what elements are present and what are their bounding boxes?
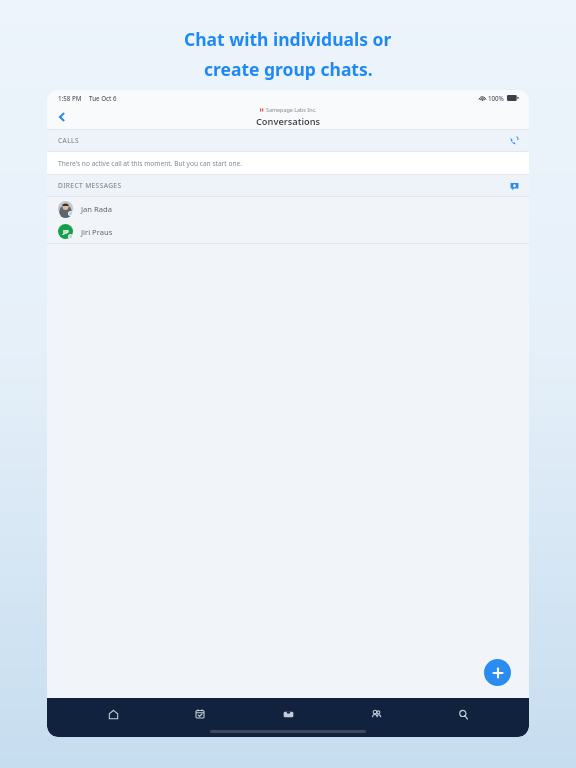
staticText: There's no active call at this moment. B… <box>58 159 243 168</box>
button[interactable]: Start a call <box>505 132 523 150</box>
button[interactable]: JP <box>47 220 529 243</box>
staticText: Chat with individuals or <box>184 27 392 51</box>
staticText: 100% <box>488 94 504 102</box>
staticText: Jiri Praus <box>81 227 113 237</box>
button[interactable]: New direct message <box>505 177 523 195</box>
staticText: create group chats. <box>204 57 373 81</box>
staticText: DIRECT MESSAGES <box>58 181 122 190</box>
staticText: Conversations <box>256 115 321 128</box>
button[interactable]: Jan Rada <box>47 197 529 220</box>
staticText: JP <box>63 228 69 236</box>
button[interactable]: Inbox <box>266 704 310 724</box>
staticText: CALLS <box>58 136 79 145</box>
button[interactable]: People <box>354 704 398 724</box>
staticText: Tue Oct 6 <box>89 94 117 102</box>
staticText: Jan Rada <box>81 204 112 214</box>
button[interactable]: Back <box>53 108 71 126</box>
button[interactable]: New conversation <box>484 659 511 686</box>
button[interactable]: Search <box>441 704 485 724</box>
staticText: 1:58 PM <box>58 94 82 102</box>
staticText: Samepage Labs Inc. <box>266 106 317 113</box>
button[interactable]: Tasks <box>178 704 222 724</box>
button[interactable]: Home <box>91 704 135 724</box>
